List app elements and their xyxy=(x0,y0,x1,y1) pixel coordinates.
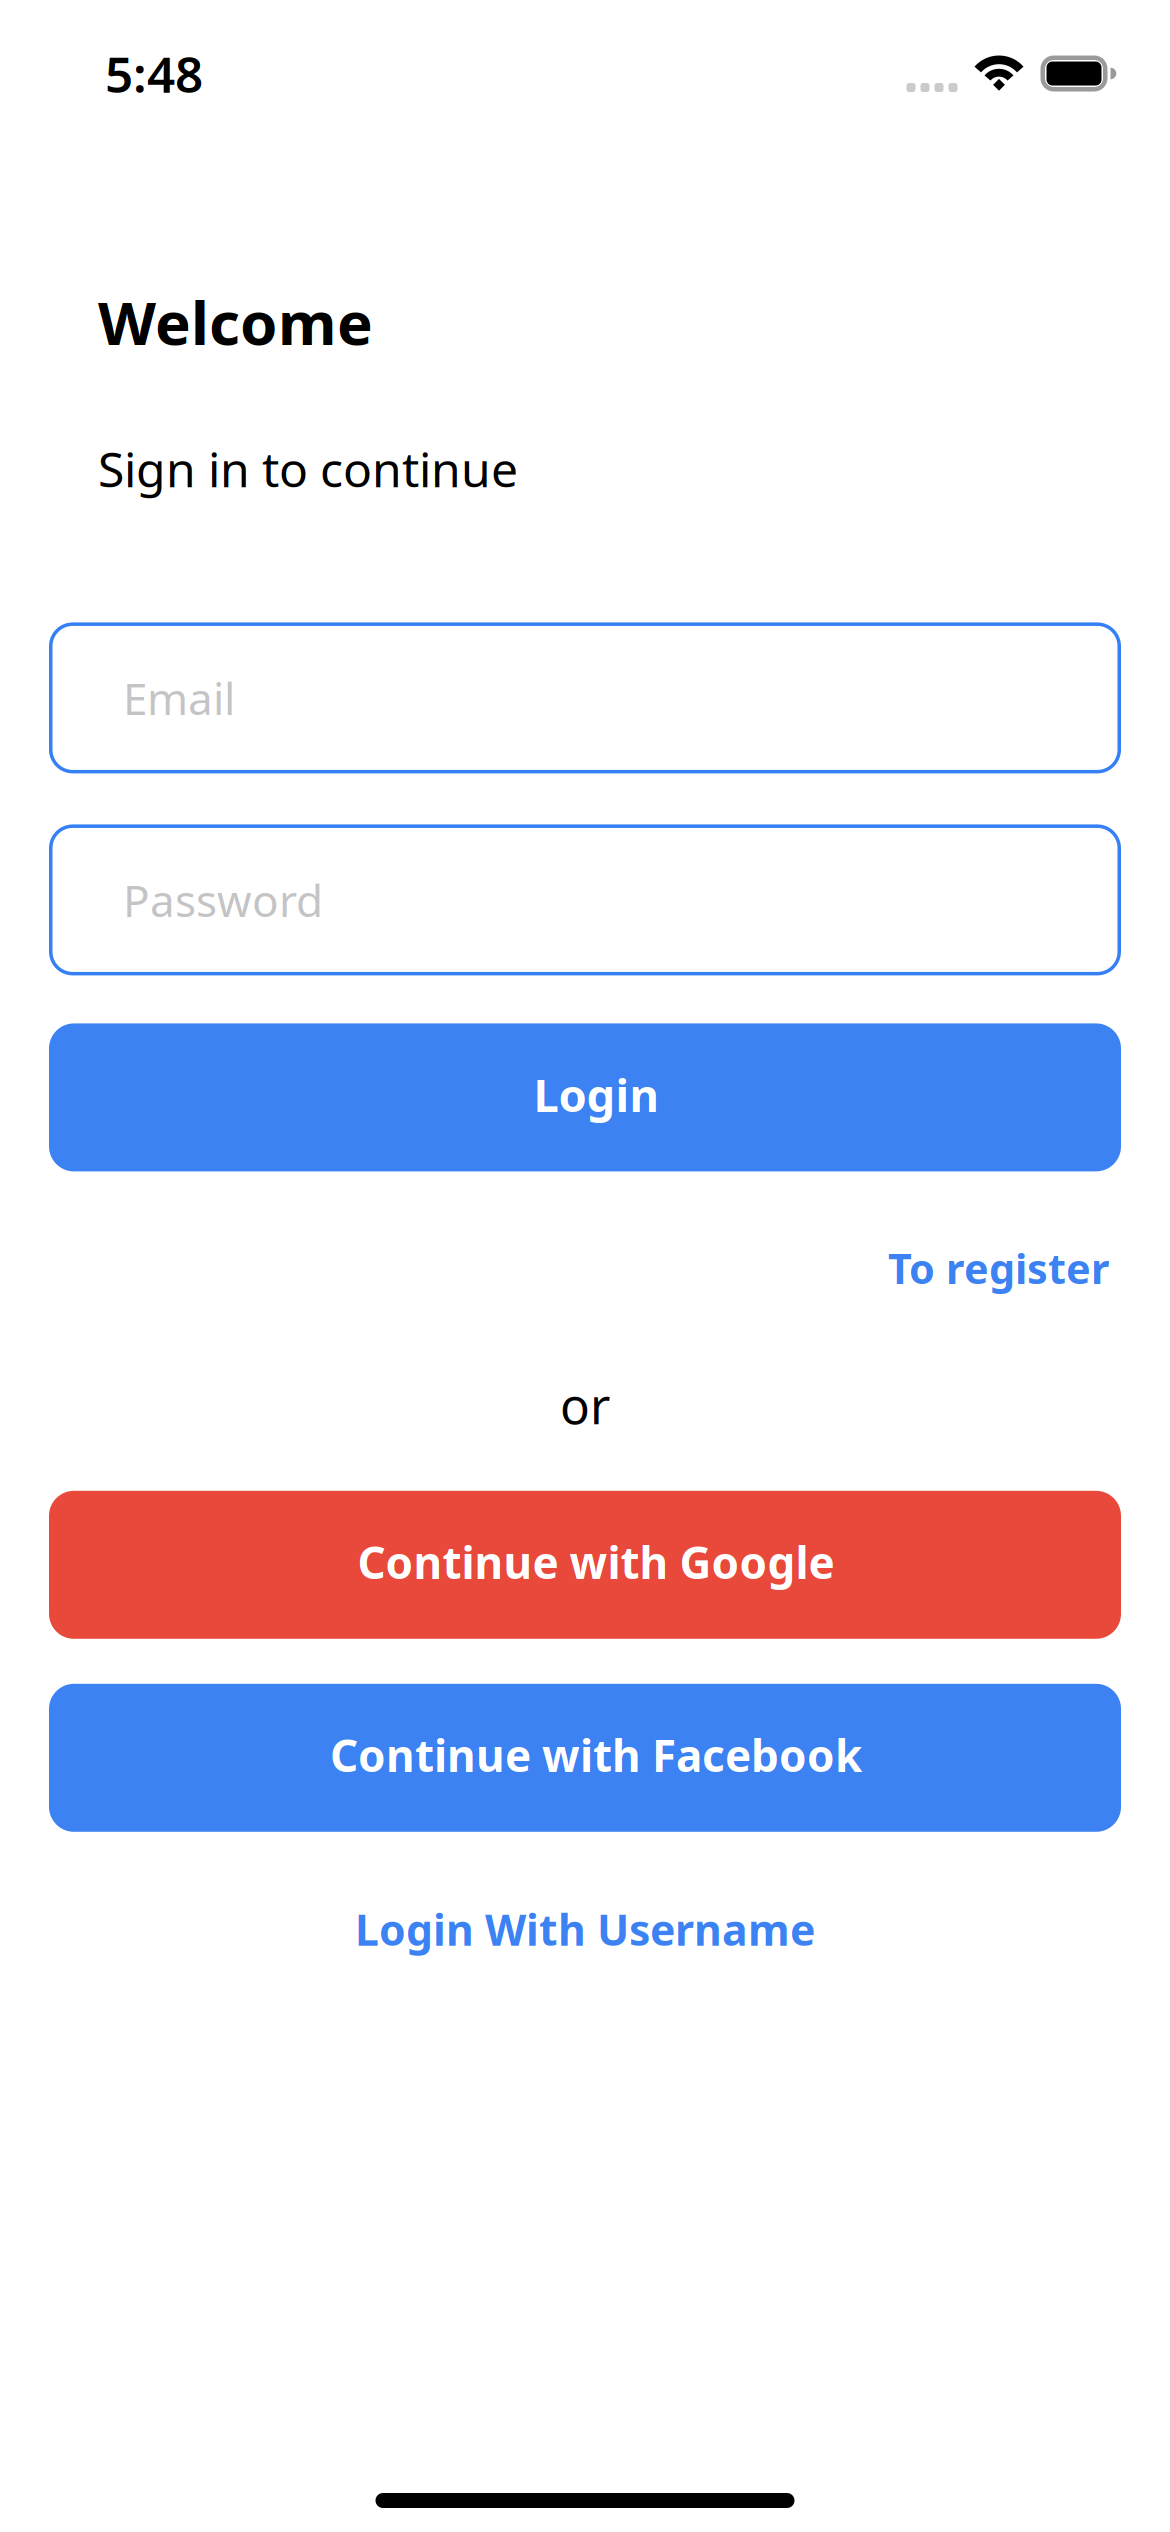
staticText: Login With Username xyxy=(355,1901,815,1957)
button[interactable]: Email xyxy=(49,622,1121,773)
staticText: Continue with Facebook xyxy=(330,1726,862,1784)
button[interactable]: To register xyxy=(888,1240,1109,1295)
staticText: Welcome xyxy=(98,282,373,362)
button[interactable]: Login With Username xyxy=(355,1901,815,1957)
staticText: Continue with Google xyxy=(357,1533,834,1591)
staticText: 5:48 xyxy=(105,41,203,106)
button[interactable]: Login xyxy=(49,1023,1121,1171)
staticText: or xyxy=(560,1372,610,1438)
button[interactable]: Password xyxy=(49,824,1121,975)
staticText: To register xyxy=(888,1240,1109,1295)
button[interactable]: Continue with Google xyxy=(49,1491,1121,1639)
staticText: Sign in to continue xyxy=(98,437,518,500)
staticText: Email xyxy=(123,669,235,727)
staticText: Password xyxy=(123,871,323,929)
staticText: Login xyxy=(533,1064,658,1124)
button[interactable]: Continue with Facebook xyxy=(49,1684,1121,1832)
